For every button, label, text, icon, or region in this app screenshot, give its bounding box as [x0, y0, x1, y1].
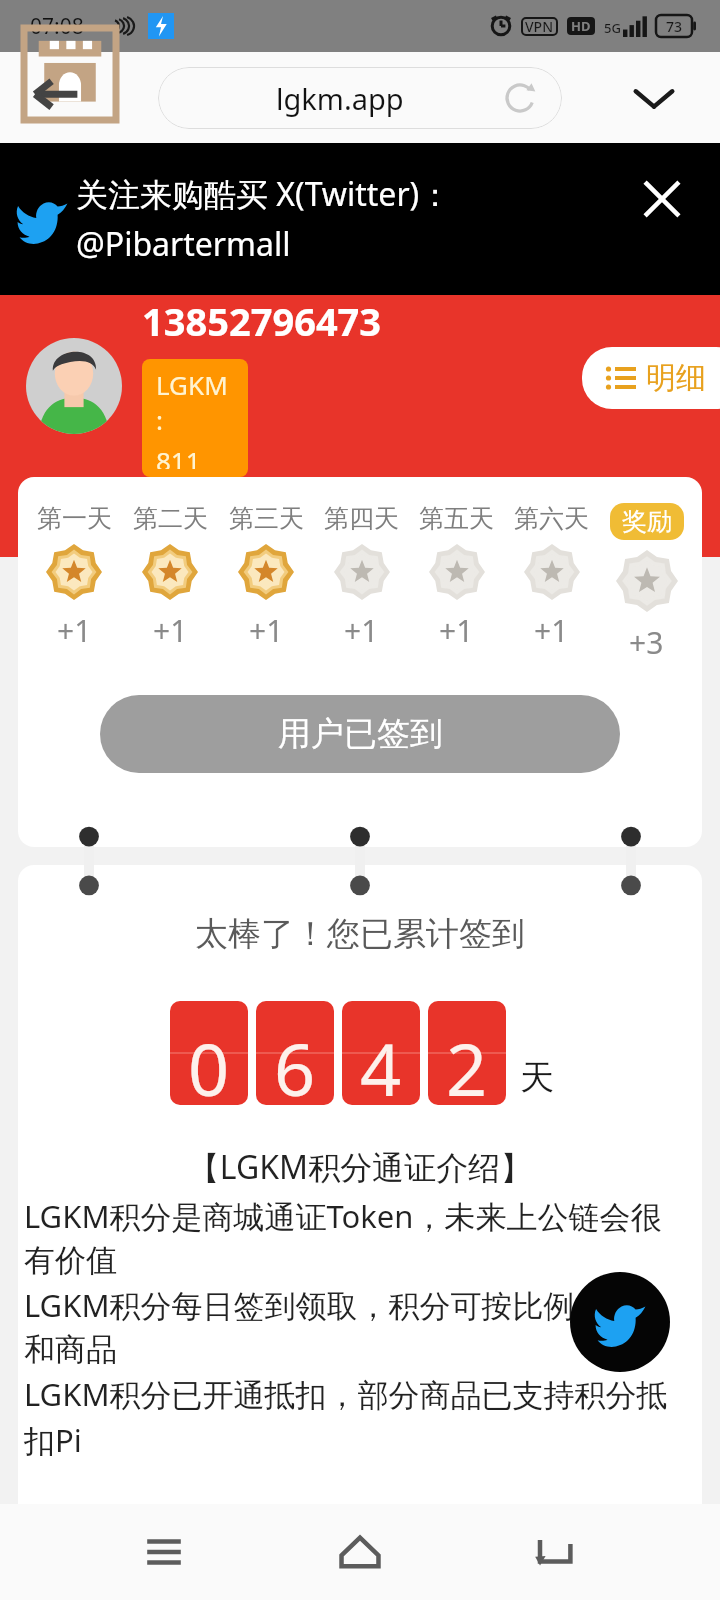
staticText: 天 — [520, 1056, 554, 1099]
staticText: LGKM积分每日签到领取，积分可按比例兑换Pi — [24, 1284, 664, 1326]
button[interactable]: Close — [638, 175, 686, 223]
button[interactable]: lgkm.app — [158, 67, 562, 129]
staticText: 811 — [156, 443, 201, 469]
button[interactable]: 第五天 — [409, 503, 504, 651]
staticText: 【LGKM积分通证介绍】 — [18, 1145, 702, 1189]
button[interactable]: 第一天 — [26, 503, 122, 651]
staticText: LGKM: — [156, 367, 234, 437]
staticText: 第一天 — [37, 503, 112, 534]
button[interactable]: Twitter — [570, 1272, 670, 1372]
staticText: 奖励 — [622, 506, 672, 537]
button[interactable]: Recents — [132, 1520, 196, 1584]
staticText: 扣Pi — [24, 1419, 82, 1461]
button[interactable]: 奖励 — [599, 503, 694, 663]
button[interactable]: Home — [328, 1520, 392, 1584]
staticText: 73 — [666, 17, 683, 36]
staticText: +3 — [629, 622, 664, 663]
staticText: 第二天 — [133, 503, 208, 534]
staticText: 第四天 — [324, 503, 399, 534]
button[interactable]: 第四天 — [314, 503, 409, 651]
button[interactable]: Expand — [630, 74, 678, 122]
button[interactable]: Avatar — [26, 338, 122, 434]
staticText: @Pibartermall — [76, 222, 291, 266]
staticText: 有价值 — [24, 1241, 117, 1280]
staticText: 2 — [446, 1019, 488, 1105]
staticText: VPN — [525, 17, 554, 36]
button[interactable]: 第三天 — [218, 503, 314, 651]
button[interactable]: 第六天 — [504, 503, 599, 651]
staticText: 6 — [274, 1019, 316, 1105]
staticText: 0 — [188, 1019, 230, 1105]
staticText: LGKM积分是商城通证Token，未来上公链会很 — [24, 1195, 662, 1237]
staticText: 07:08 — [30, 12, 84, 41]
button[interactable]: 第二天 — [122, 503, 218, 651]
staticText: +1 — [344, 610, 379, 651]
staticText: 第三天 — [229, 503, 304, 534]
staticText: +1 — [153, 610, 188, 651]
staticText: lgkm.app — [276, 79, 404, 118]
staticText: 用户已签到 — [278, 713, 443, 755]
button[interactable]: 明细 — [606, 359, 706, 397]
staticText: 13852796473 — [142, 295, 382, 347]
staticText: 4 — [360, 1019, 402, 1105]
staticText: 5G — [604, 19, 621, 37]
staticText: 明细 — [646, 359, 706, 397]
staticText: +1 — [249, 610, 284, 651]
staticText: LGKM积分已开通抵扣，部分商品已支持积分抵 — [24, 1373, 668, 1415]
staticText: 第六天 — [514, 503, 589, 534]
staticText: 太棒了！您已累计签到 — [18, 913, 702, 955]
staticText: 关注来购酷买 X(Twitter)： — [76, 172, 452, 216]
staticText: 和商品 — [24, 1330, 117, 1369]
staticText: +1 — [439, 610, 474, 651]
staticText: +1 — [534, 610, 569, 651]
button[interactable]: 关注来购酷买 X(Twitter)： — [0, 143, 720, 295]
button[interactable]: LGKM: — [156, 367, 234, 469]
staticText: HD — [571, 17, 591, 35]
staticText: 第五天 — [419, 503, 494, 534]
button[interactable]: 用户已签到 — [100, 695, 620, 773]
button[interactable]: Back — [524, 1520, 588, 1584]
staticText: +1 — [57, 610, 92, 651]
